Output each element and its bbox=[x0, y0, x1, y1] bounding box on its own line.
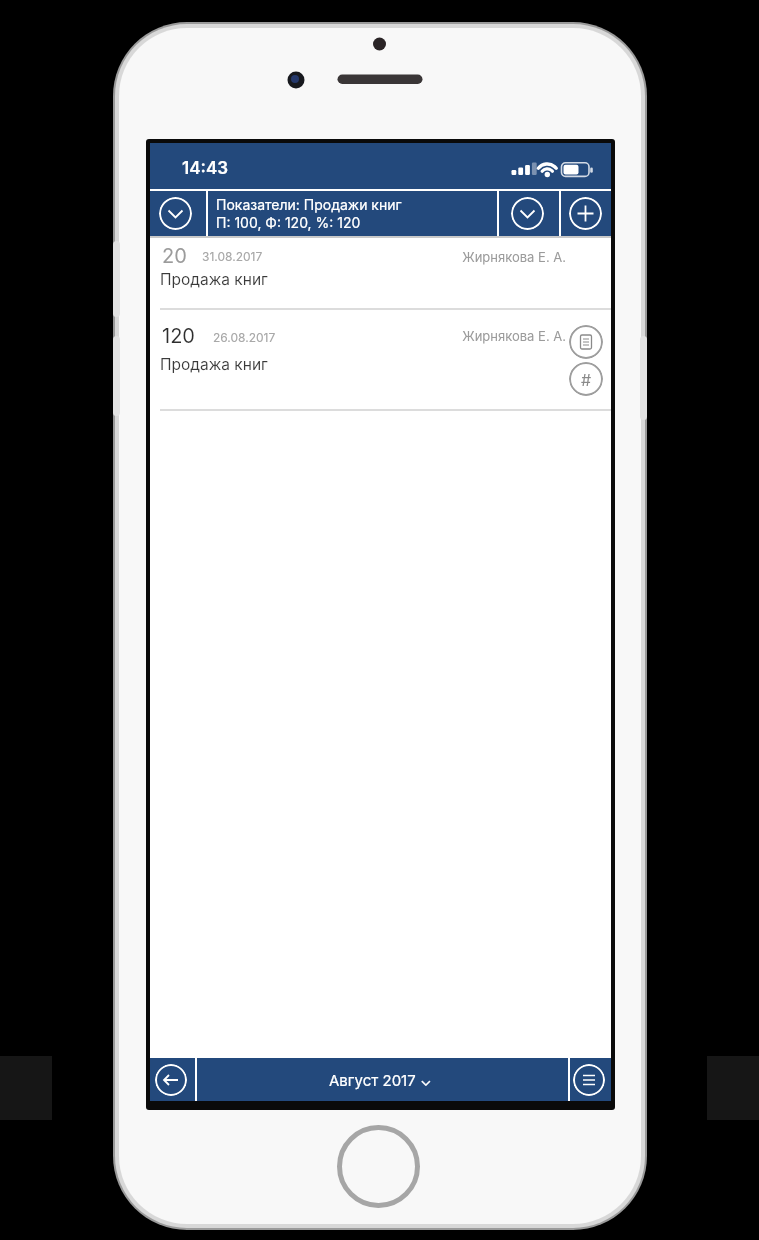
staticText: Продажа книг bbox=[160, 355, 268, 374]
staticText: 26.08.2017 bbox=[213, 330, 276, 345]
staticText: Жирнякова Е. А. bbox=[366, 328, 566, 344]
button[interactable]: 20 bbox=[150, 237, 611, 308]
staticText: Август 2017 ⌄ bbox=[329, 1071, 432, 1089]
staticText: 20 bbox=[162, 244, 187, 268]
button[interactable]: Август 2017 ⌄ bbox=[150, 1058, 611, 1101]
staticText: # bbox=[581, 370, 592, 389]
staticText: 120 bbox=[162, 324, 195, 348]
staticText: Показатели: Продажи книг П: 100, Ф: 120,… bbox=[216, 196, 402, 231]
button[interactable]: # bbox=[569, 362, 603, 396]
staticText: Жирнякова Е. А. bbox=[366, 249, 566, 265]
staticText: 14:43 bbox=[182, 158, 229, 179]
button[interactable] bbox=[573, 1064, 605, 1096]
staticText: Продажа книг bbox=[160, 270, 268, 289]
button[interactable] bbox=[155, 1064, 187, 1096]
button[interactable] bbox=[569, 325, 603, 359]
staticText: 31.08.2017 bbox=[202, 249, 263, 264]
button[interactable]: 120 bbox=[150, 309, 611, 409]
button[interactable] bbox=[511, 197, 544, 230]
button[interactable] bbox=[159, 197, 192, 230]
button[interactable] bbox=[569, 197, 602, 230]
